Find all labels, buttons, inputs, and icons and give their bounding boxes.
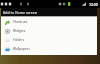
button[interactable]: Wallpapers [1, 44, 97, 53]
staticText: Wallpapers [13, 47, 30, 51]
button[interactable]: Widgets [1, 26, 97, 35]
staticText: Add to Home screen [3, 10, 38, 15]
staticText: Widgets [13, 29, 26, 33]
staticText: 12:30 [89, 2, 98, 7]
button[interactable]: Folders [1, 35, 97, 44]
staticText: Folders [13, 38, 25, 42]
button[interactable]: Shortcuts [1, 17, 97, 26]
staticText: Shortcuts [13, 20, 28, 24]
